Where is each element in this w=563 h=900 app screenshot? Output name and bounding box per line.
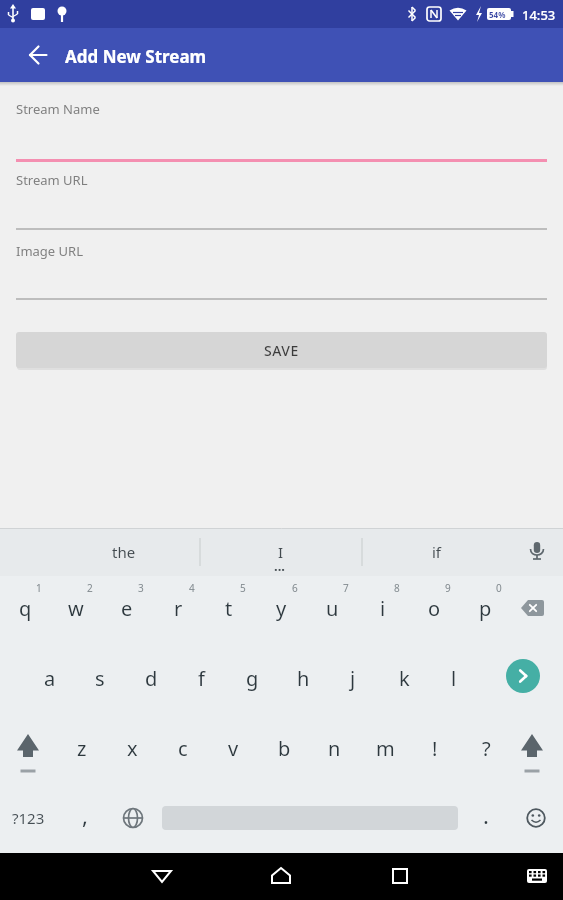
- button[interactable]: [108, 790, 158, 846]
- button[interactable]: i: [358, 580, 408, 636]
- staticText: s: [95, 665, 105, 692]
- staticText: ,: [82, 800, 88, 830]
- staticText: c: [178, 735, 188, 762]
- staticText: the: [112, 542, 136, 562]
- staticText: e: [121, 595, 133, 622]
- staticText: t: [225, 595, 233, 622]
- button[interactable]: s: [75, 650, 125, 706]
- button[interactable]: [521, 536, 553, 568]
- button[interactable]: d: [126, 650, 176, 706]
- button[interactable]: w: [51, 580, 101, 636]
- staticText: p: [479, 595, 492, 622]
- button[interactable]: if: [387, 528, 487, 576]
- button[interactable]: [140, 854, 184, 898]
- button[interactable]: p: [460, 580, 510, 636]
- staticText: f: [198, 665, 205, 692]
- button[interactable]: [22, 39, 54, 71]
- button[interactable]: r: [153, 580, 203, 636]
- button[interactable]: c: [158, 720, 208, 776]
- staticText: w: [68, 595, 84, 622]
- staticText: g: [246, 665, 259, 692]
- staticText: 6: [292, 581, 298, 595]
- button[interactable]: [507, 720, 557, 776]
- button[interactable]: a: [25, 650, 75, 706]
- button[interactable]: q: [0, 580, 50, 636]
- button[interactable]: [378, 854, 422, 898]
- button[interactable]: [259, 854, 303, 898]
- staticText: v: [228, 735, 239, 762]
- button[interactable]: x: [107, 720, 157, 776]
- button[interactable]: I: [231, 528, 331, 576]
- staticText: .: [483, 800, 489, 830]
- staticText: u: [326, 595, 339, 622]
- staticText: j: [350, 665, 356, 692]
- button[interactable]: g: [227, 650, 277, 706]
- staticText: a: [44, 665, 56, 692]
- button[interactable]: the: [74, 528, 174, 576]
- button[interactable]: ?: [461, 720, 511, 776]
- staticText: m: [376, 735, 395, 762]
- staticText: ?: [482, 735, 491, 762]
- button[interactable]: .: [461, 787, 511, 843]
- staticText: 4: [189, 581, 195, 595]
- button[interactable]: l: [429, 650, 479, 706]
- staticText: r: [174, 595, 183, 622]
- staticText: 0: [496, 581, 502, 595]
- staticText: 7: [343, 581, 349, 595]
- button[interactable]: y: [256, 580, 306, 636]
- staticText: SAVE: [264, 341, 299, 360]
- button[interactable]: m: [360, 720, 410, 776]
- staticText: k: [399, 665, 410, 692]
- staticText: I: [278, 542, 284, 562]
- staticText: y: [276, 595, 287, 622]
- button[interactable]: ?123: [1, 790, 55, 846]
- staticText: if: [432, 542, 442, 562]
- button[interactable]: o: [409, 580, 459, 636]
- staticText: b: [278, 735, 291, 762]
- button[interactable]: ,: [60, 787, 110, 843]
- staticText: x: [127, 735, 138, 762]
- button[interactable]: [515, 854, 559, 898]
- staticText: 3: [138, 581, 144, 595]
- button[interactable]: e: [102, 580, 152, 636]
- staticText: 2: [87, 581, 93, 595]
- staticText: 5: [240, 581, 246, 595]
- staticText: h: [297, 665, 310, 692]
- button[interactable]: v: [208, 720, 258, 776]
- button[interactable]: h: [278, 650, 328, 706]
- staticText: Image URL: [16, 242, 83, 260]
- staticText: 9: [445, 581, 451, 595]
- staticText: o: [428, 595, 441, 622]
- button[interactable]: u: [307, 580, 357, 636]
- staticText: 8: [394, 581, 400, 595]
- staticText: d: [145, 665, 158, 692]
- staticText: Stream Name: [16, 100, 100, 118]
- button[interactable]: [511, 790, 561, 846]
- staticText: z: [77, 735, 87, 762]
- button[interactable]: SAVE: [16, 332, 547, 368]
- staticText: l: [451, 665, 457, 692]
- button[interactable]: t: [204, 580, 254, 636]
- staticText: !: [432, 735, 438, 762]
- staticText: Add New Stream: [65, 45, 207, 68]
- button[interactable]: [3, 720, 53, 776]
- staticText: q: [19, 595, 32, 622]
- button[interactable]: b: [259, 720, 309, 776]
- button[interactable]: z: [57, 720, 107, 776]
- button[interactable]: [506, 659, 540, 693]
- button[interactable]: k: [379, 650, 429, 706]
- staticText: i: [380, 595, 386, 622]
- staticText: 54%: [489, 9, 506, 20]
- button[interactable]: j: [328, 650, 378, 706]
- button[interactable]: n: [309, 720, 359, 776]
- staticText: n: [328, 735, 341, 762]
- button[interactable]: f: [176, 650, 226, 706]
- staticText: Stream URL: [16, 171, 88, 189]
- staticText: 1: [36, 581, 42, 595]
- button[interactable]: [505, 580, 561, 636]
- button[interactable]: !: [410, 720, 460, 776]
